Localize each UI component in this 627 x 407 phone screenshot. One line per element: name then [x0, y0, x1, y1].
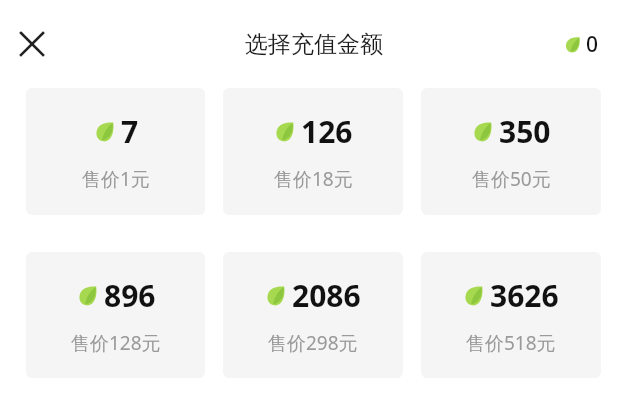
staticText: 售价18元	[274, 166, 353, 192]
staticText: 126	[301, 111, 353, 152]
staticText: 7	[121, 111, 139, 152]
staticText: 0	[586, 30, 599, 59]
staticText: 售价518元	[466, 330, 556, 356]
staticText: 售价128元	[71, 330, 161, 356]
staticText: 2086	[292, 275, 361, 316]
button[interactable]: 126	[223, 88, 403, 215]
staticText: 售价298元	[268, 330, 358, 356]
staticText: 896	[104, 275, 156, 316]
staticText: 350	[499, 111, 551, 152]
button[interactable]: 3626	[421, 252, 601, 378]
button[interactable]: 7	[26, 88, 205, 215]
button[interactable]: 0	[564, 30, 599, 59]
button[interactable]: 350	[421, 88, 601, 215]
staticText: 售价1元	[82, 166, 150, 192]
button[interactable]: 896	[26, 252, 205, 378]
staticText: 选择充值金额	[245, 30, 383, 59]
button[interactable]: 2086	[223, 252, 403, 378]
staticText: 3626	[490, 275, 559, 316]
button[interactable]: Close	[12, 24, 52, 64]
staticText: 售价50元	[472, 166, 551, 192]
